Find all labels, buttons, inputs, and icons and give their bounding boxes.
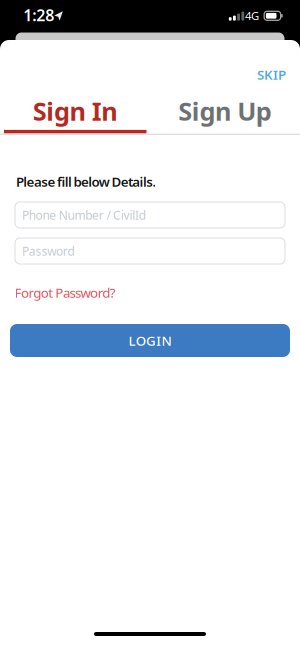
- staticText: Sign Up: [178, 94, 272, 128]
- staticText: Forgot Password?: [14, 283, 116, 302]
- button[interactable]: Sign Up: [152, 95, 298, 127]
- staticText: LOGIN: [129, 331, 171, 350]
- button[interactable]: Forgot Password?: [14, 283, 116, 302]
- staticText: Please fill below Details.: [16, 172, 156, 191]
- staticText: Sign In: [33, 94, 117, 128]
- button[interactable]: LOGIN: [10, 324, 290, 357]
- staticText: 4G: [245, 8, 259, 23]
- staticText: 1:28: [23, 4, 54, 26]
- staticText: Password: [22, 243, 75, 259]
- button[interactable]: SKIP: [257, 66, 286, 83]
- button[interactable]: Sign In: [2, 95, 148, 127]
- staticText: SKIP: [257, 66, 286, 83]
- staticText: Phone Number / CivilId: [22, 207, 146, 223]
